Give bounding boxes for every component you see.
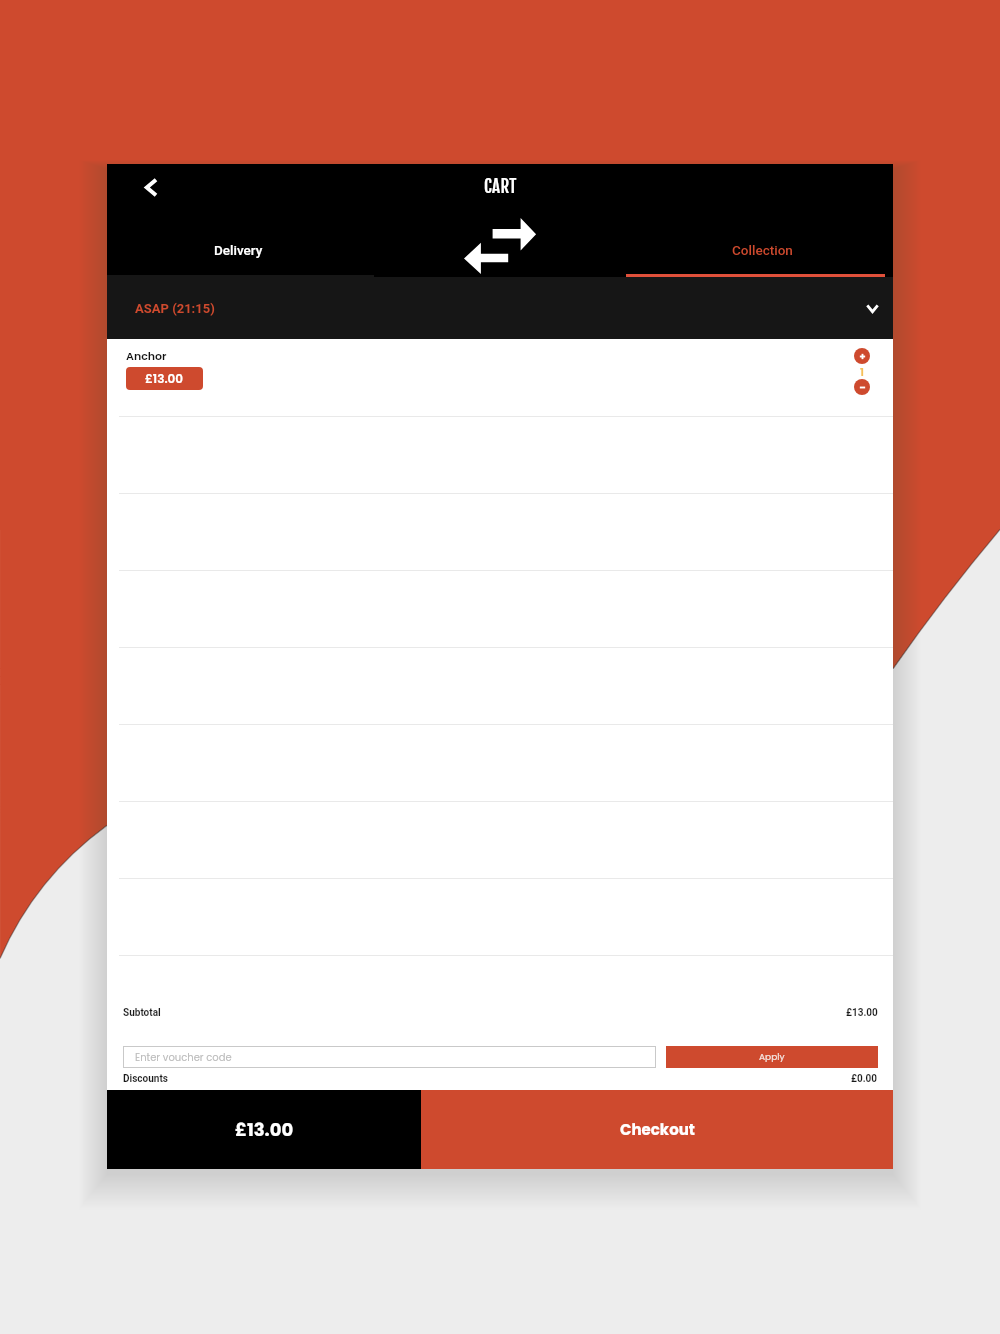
button[interactable]: Collection [631,222,893,277]
button[interactable]: Swap delivery and collection [369,222,631,277]
button[interactable]: Back [127,164,175,210]
staticText: Subtotal [123,1007,161,1019]
staticText: Collection [732,242,793,258]
staticText: Enter voucher code [135,1050,232,1064]
staticText: £0.00 [851,1073,878,1085]
staticText: £13.00 [235,1117,294,1142]
staticText: Apply [759,1051,785,1064]
staticText: £13.00 [145,370,184,387]
button[interactable]: Anchor [107,339,893,416]
staticText: CART [484,176,517,197]
button[interactable]: Apply [666,1046,878,1068]
button[interactable]: £13.00 [107,1090,421,1169]
staticText: Delivery [214,242,263,258]
staticText: Anchor [126,348,167,363]
staticText: 1 [860,364,864,379]
button[interactable]: Decrease quantity [854,379,870,395]
button[interactable]: Checkout [421,1090,893,1169]
button[interactable]: ASAP (21:15) [107,277,893,339]
staticText: Checkout [620,1119,695,1140]
button[interactable]: Enter voucher code [123,1046,656,1068]
staticText: ASAP (21:15) [135,301,215,316]
button[interactable]: £13.00 [126,367,203,390]
staticText: £13.00 [846,1007,878,1019]
button[interactable]: Increase quantity [854,348,870,364]
button[interactable]: Delivery [107,222,369,277]
staticText: Discounts [123,1073,168,1085]
